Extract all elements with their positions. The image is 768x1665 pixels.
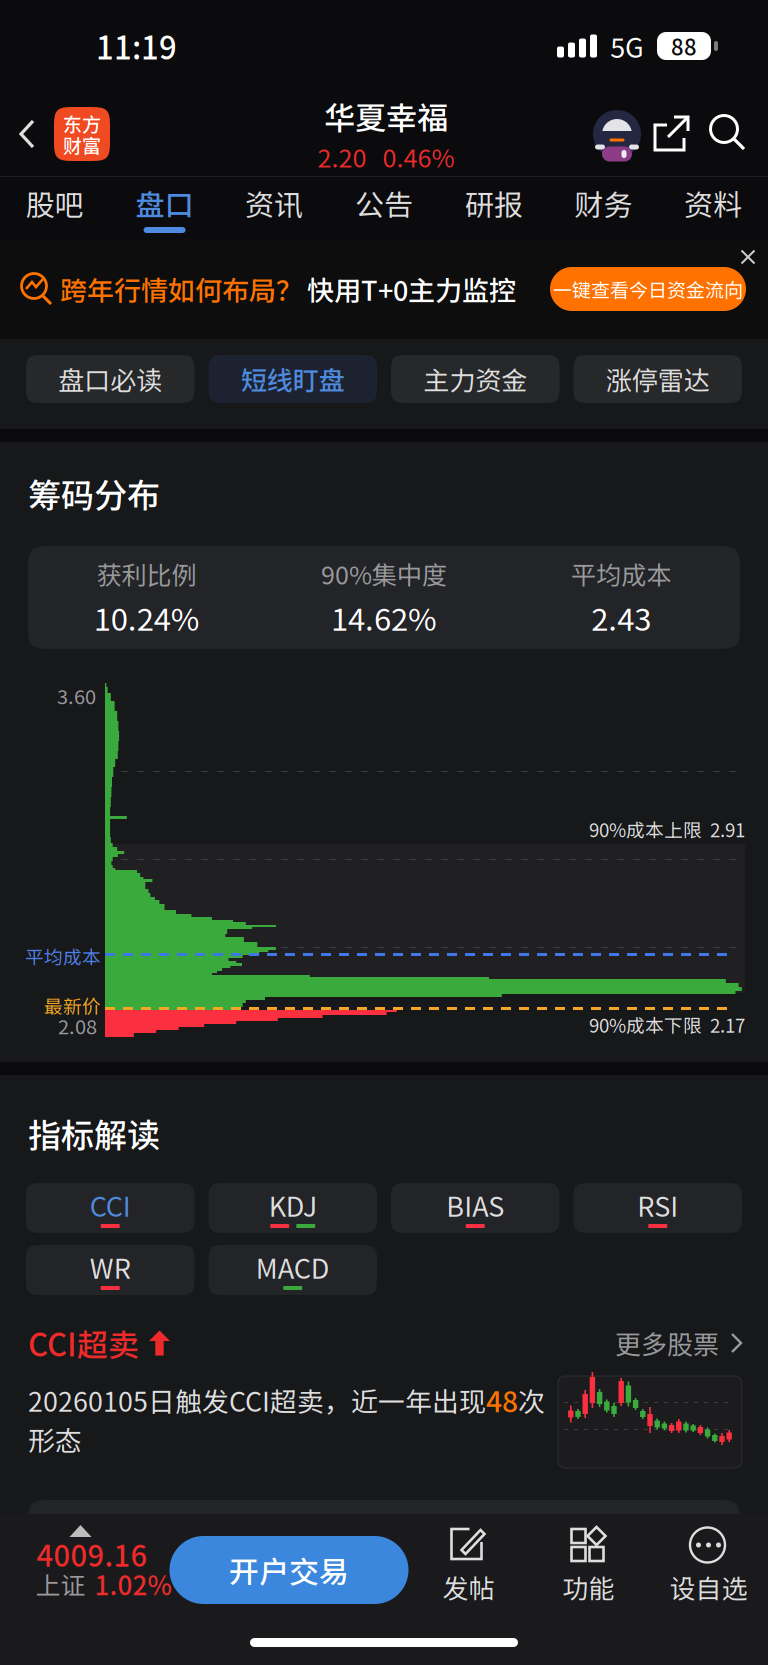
staticText: 公告 [355,182,413,224]
staticText: 上证 [35,1566,85,1602]
button[interactable]: AI 助手 [590,94,644,174]
staticText: 0.50% [606,1533,694,1577]
staticText: 20260105日触发CCI超卖，近一年出现 [28,1381,486,1419]
staticText: 财务 [574,182,632,224]
staticText: 平均成本 [571,555,671,592]
button[interactable]: WR [26,1245,194,1295]
button[interactable]: 分享 [644,94,700,174]
staticText: 涨停雷达 [606,360,710,398]
staticText: CCI [90,1185,131,1225]
staticText: 资料 [684,182,742,224]
staticText: 90%成本下限 2.17 [589,1011,745,1038]
staticText: 资讯 [245,182,303,224]
button[interactable]: MACD [208,1245,377,1295]
staticText: 财富 [63,131,101,159]
button[interactable]: 资料 [658,177,768,239]
button[interactable]: RSI [573,1183,742,1233]
staticText: BIAS [446,1185,504,1225]
staticText: 跨年行情如何布局？ [60,269,303,309]
staticText: 88 [671,30,697,62]
staticText: 更多股票 [615,1324,719,1362]
staticText: 股吧 [26,182,84,224]
button[interactable]: 资讯 [219,177,329,239]
button[interactable]: 研报 [439,177,549,239]
staticText: 短线盯盘 [241,360,345,398]
staticText: 90%集中度 [321,555,447,592]
button[interactable]: 返回 [0,94,54,174]
staticText: 指标解读 [28,1109,160,1157]
staticText: 48 [486,1379,518,1420]
button[interactable]: BIAS [391,1183,559,1233]
staticText: 3.60 [57,681,96,710]
staticText: MACD [256,1247,330,1287]
staticText: 功能 [562,1568,614,1606]
staticText: 0.46% [382,138,454,175]
staticText: 最新价 [44,992,101,1019]
staticText: 次日平均涨幅 [430,1536,586,1574]
staticText: RSI [637,1185,678,1225]
button[interactable]: 更多股票 [615,1323,744,1363]
staticText: 盘口 [136,182,194,224]
button[interactable]: 涨停雷达 [573,355,742,403]
button[interactable]: 搜索 [700,94,756,174]
staticText: 主力资金 [423,360,527,398]
staticText: 一键查看今日资金流向 [553,275,743,303]
staticText: 获利比例 [97,555,197,592]
staticText: CCI超卖 [28,1320,139,1365]
staticText: 形态 [28,1420,82,1458]
button[interactable]: KDJ [208,1183,377,1233]
button[interactable]: 股吧 [0,177,110,239]
staticText: 设自选 [669,1568,747,1606]
button[interactable]: 东方财富 [54,107,110,161]
button[interactable]: CCI [26,1183,194,1233]
staticText: 研报 [465,182,523,224]
staticText: 发帖 [442,1568,494,1606]
button[interactable]: 盘口必读 [26,355,194,403]
button[interactable]: 发帖 [408,1514,528,1626]
button[interactable]: 关闭 [728,239,768,275]
staticText: 90%成本上限 2.91 [589,815,745,842]
button[interactable]: 主力资金 [391,355,559,403]
staticText: 2.43 [591,595,651,640]
button[interactable]: 财务 [549,177,658,239]
staticText: 次日上涨概率 [65,1536,221,1574]
staticText: 2.20 [317,138,366,175]
button[interactable]: 一键查看今日资金流向 [550,267,746,311]
staticText: 开户交易 [229,1548,349,1592]
staticText: 华夏幸福 [324,93,448,138]
staticText: 次 [518,1381,545,1419]
staticText: 11:19 [96,23,177,68]
button[interactable]: 公告 [329,177,439,239]
staticText: 4009.16 [36,1533,147,1575]
staticText: WR [90,1247,131,1287]
staticText: 2.08 [58,1011,97,1040]
button[interactable]: 功能 [528,1514,648,1626]
staticText: 14.62% [331,595,437,640]
button[interactable]: 盘口 [110,177,219,239]
button[interactable]: 设自选 [648,1514,768,1626]
staticText: 东方 [63,109,101,137]
staticText: 10.24% [94,595,200,640]
button[interactable]: 短线盯盘 [208,355,377,403]
staticText: 5G [610,26,644,66]
staticText: KDJ [269,1185,317,1225]
staticText: 56.06% [241,1533,346,1577]
staticText: 平均成本 [25,942,101,969]
staticText: 筹码分布 [28,469,160,517]
button[interactable]: 开户交易 [169,1536,408,1604]
staticText: 盘口必读 [58,360,162,398]
staticText: 1.02% [94,1565,171,1603]
staticText: 快用T+0主力监控 [307,269,516,309]
